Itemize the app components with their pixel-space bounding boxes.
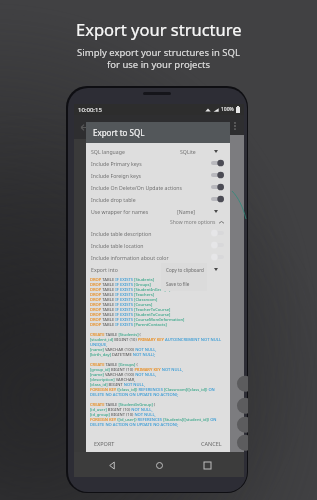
staticText: 10:00:15 [78, 106, 102, 114]
staticText: Show more options [170, 219, 216, 226]
staticText: 100% [221, 106, 234, 113]
button[interactable]: Include table description [86, 227, 230, 239]
staticText: SQLite [180, 148, 196, 155]
button[interactable]: Save to file [161, 277, 207, 291]
button[interactable]: Include drop table [86, 193, 230, 205]
staticText: Include Primary keys [91, 160, 142, 167]
staticText: Export your structure [76, 18, 242, 40]
button[interactable]: Export into [86, 263, 230, 275]
button[interactable]: More options [228, 119, 242, 133]
staticText: Include table location [91, 242, 144, 249]
button[interactable]: CANCEL [199, 438, 224, 449]
staticText: Include drop table [91, 196, 136, 203]
staticText: Include table description [91, 230, 152, 237]
staticText: EXPORT [94, 440, 115, 447]
button[interactable]: Back [76, 119, 92, 135]
staticText: Use wrapper for names [91, 208, 149, 215]
button[interactable]: Include On Delete/On Update actions [86, 181, 230, 193]
staticText: Save to file [166, 281, 190, 287]
button[interactable]: Use wrapper for names [86, 205, 230, 217]
button[interactable]: Include Foreign keys [86, 169, 230, 181]
staticText: Simply export your structures in SQL for… [77, 46, 240, 71]
staticText: CANCEL [201, 440, 222, 447]
staticText: Copy to clipboard [166, 267, 204, 273]
button[interactable]: Show more options [86, 217, 230, 227]
button[interactable]: Include Primary keys [86, 157, 230, 169]
staticText: Export to SQL [93, 127, 145, 138]
button[interactable]: Include information about color [86, 251, 230, 263]
staticText: DROP TABLE IF EXISTS [Students] DROP TAB… [90, 277, 227, 432]
button[interactable]: EXPORT [92, 438, 117, 449]
button[interactable]: Back [102, 455, 122, 475]
button[interactable]: Recents [197, 455, 217, 475]
staticText: Export into [91, 266, 118, 273]
button[interactable]: Copy to clipboard [161, 263, 207, 277]
button[interactable]: Include table location [86, 239, 230, 251]
staticText: SQL language [91, 148, 125, 155]
staticText: Include information about color [91, 254, 169, 261]
button[interactable]: SQL language [86, 145, 230, 157]
staticText: [Name] [177, 208, 196, 215]
button[interactable]: Home [149, 455, 169, 475]
staticText: Include On Delete/On Update actions [91, 184, 183, 191]
staticText: Include Foreign keys [91, 172, 142, 179]
